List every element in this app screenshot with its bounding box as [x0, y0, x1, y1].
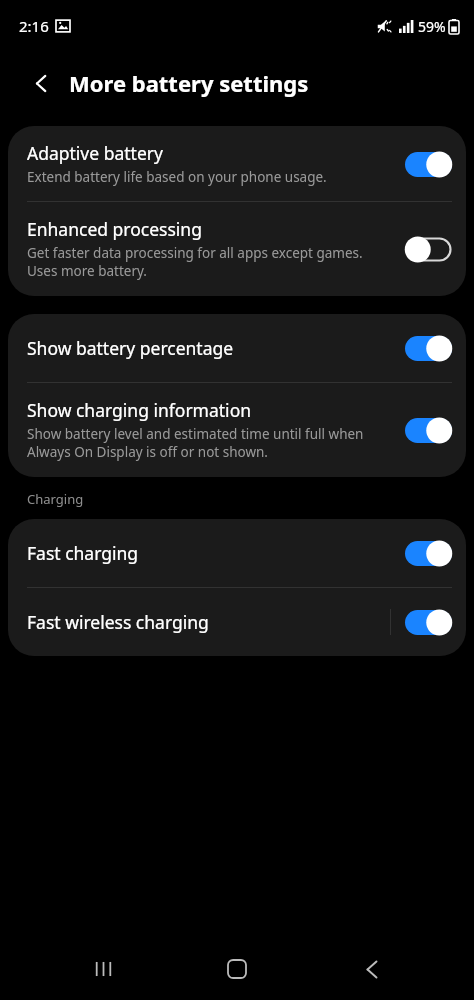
button[interactable]: Show charging information [8, 383, 466, 477]
staticText: Fast wireless charging [27, 610, 209, 634]
button[interactable]: Adaptive battery [8, 126, 466, 201]
staticText: Show charging information [27, 398, 252, 422]
staticText: Charging [27, 490, 84, 508]
staticText: Show battery level and estimated time un… [27, 425, 394, 461]
button[interactable]: On [402, 414, 454, 446]
staticText: Extend battery life based on your phone … [27, 168, 327, 186]
button[interactable]: Recents [71, 938, 135, 1000]
button[interactable]: Show battery percentage [8, 314, 466, 382]
button[interactable]: Off [402, 233, 454, 265]
button[interactable]: Enhanced processing [8, 202, 466, 296]
staticText: Get faster data processing for all apps … [27, 244, 394, 280]
staticText: 2:16 [19, 16, 49, 36]
button[interactable]: On [402, 537, 454, 569]
staticText: Show battery percentage [27, 336, 234, 360]
button[interactable]: Back [340, 938, 404, 1000]
button[interactable]: Fast charging [8, 519, 466, 587]
staticText: Fast charging [27, 541, 139, 565]
button[interactable]: Fast wireless charging [8, 588, 466, 656]
staticText: More battery settings [69, 68, 309, 98]
button[interactable]: On [402, 606, 454, 638]
button[interactable]: On [402, 148, 454, 180]
staticText: Adaptive battery [27, 141, 163, 165]
staticText: Enhanced processing [27, 217, 202, 241]
button[interactable]: Back [24, 66, 58, 100]
button[interactable]: Home [205, 938, 269, 1000]
staticText: 59% [418, 17, 446, 36]
button[interactable]: On [402, 332, 454, 364]
